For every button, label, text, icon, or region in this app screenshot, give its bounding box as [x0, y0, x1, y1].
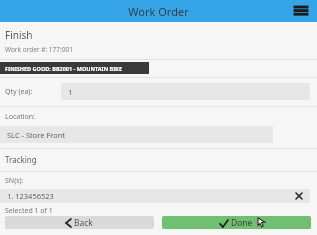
staticText: SLC - Store Front — [7, 130, 66, 140]
staticText: Done — [231, 217, 253, 229]
button[interactable]: 1. 123456523 — [0, 189, 310, 203]
button[interactable]: Menu — [291, 1, 311, 21]
staticText: Back — [74, 217, 93, 229]
staticText: 1 — [68, 87, 73, 97]
staticText: SN(s): — [5, 176, 24, 186]
staticText: Tracking — [5, 154, 37, 165]
staticText: Work Order — [128, 4, 189, 19]
button[interactable]: SLC - Store Front — [0, 126, 273, 143]
staticText: Location: — [5, 112, 35, 122]
button[interactable]: 1 — [61, 83, 310, 100]
staticText: Finish — [5, 28, 33, 42]
button[interactable]: Done — [162, 216, 311, 229]
staticText: 1. 123456523 — [7, 191, 54, 201]
button[interactable]: Remove serial number — [294, 191, 304, 201]
staticText: Qty (ea): — [5, 87, 33, 97]
staticText: FINISHED GOOD: BB2001 - MOUNTAIN BIKE — [5, 65, 123, 72]
staticText: Work order #: 177:001 — [5, 45, 73, 54]
button[interactable]: Back — [5, 216, 154, 229]
staticText: Selected 1 of 1 — [5, 206, 53, 216]
